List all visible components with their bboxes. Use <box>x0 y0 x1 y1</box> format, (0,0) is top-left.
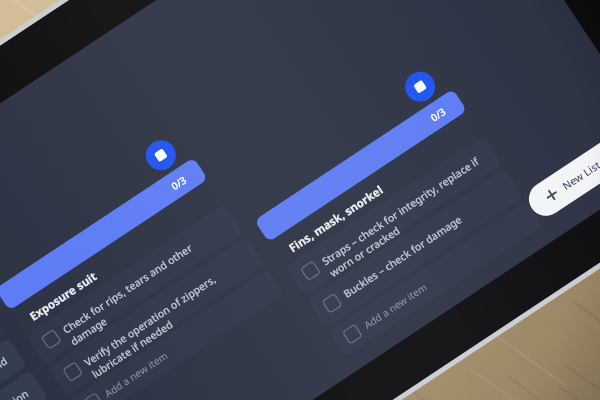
button[interactable]: Checklist app on tablet <box>0 0 600 400</box>
